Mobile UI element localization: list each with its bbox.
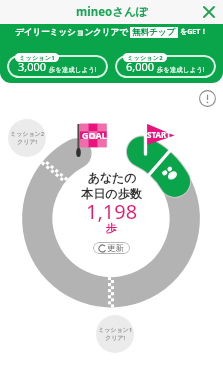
staticText: クリア!	[105, 334, 126, 342]
staticText: 1,198	[86, 198, 138, 225]
staticText: START	[147, 129, 171, 140]
staticText: 歩	[106, 221, 117, 235]
button[interactable]: 更新	[93, 242, 130, 254]
staticText: デイリーミッションクリアで	[15, 27, 128, 38]
staticText: 歩を達成しよう!	[155, 65, 205, 74]
button[interactable]: 3,000	[7, 55, 108, 78]
staticText: ミッション2	[10, 130, 45, 138]
staticText: をGET！	[180, 27, 208, 37]
staticText: 3,000	[18, 59, 47, 74]
button[interactable]: Information	[197, 88, 217, 108]
button[interactable]: 6,000	[115, 55, 216, 78]
staticText: mineoさんぽ	[76, 4, 148, 20]
staticText: 歩を達成しよう!	[47, 65, 97, 74]
staticText: ミッション1	[19, 54, 55, 62]
staticText: 更新	[107, 243, 124, 254]
staticText: あなたの	[87, 170, 137, 185]
button[interactable]: Close	[200, 3, 218, 21]
staticText: ミッション2	[127, 54, 163, 62]
staticText: GOAL	[82, 129, 107, 141]
staticText: クリア!	[17, 138, 38, 146]
staticText: 6,000	[126, 59, 155, 74]
staticText: 本日の歩数	[81, 186, 142, 201]
staticText: 無料チップ	[132, 27, 176, 38]
staticText: ミッション1	[98, 326, 133, 334]
